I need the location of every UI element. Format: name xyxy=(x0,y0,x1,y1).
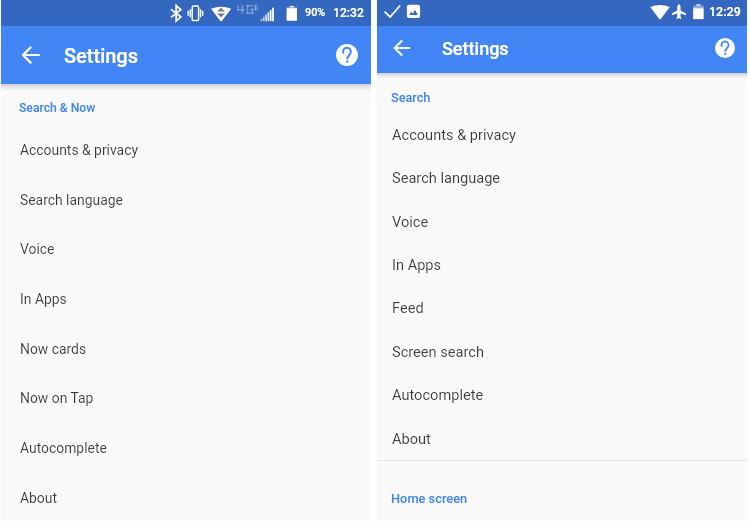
staticText: Voice xyxy=(20,241,55,257)
staticText: 90% xyxy=(305,6,326,19)
button[interactable]: Help xyxy=(715,38,735,58)
staticText: Home screen xyxy=(391,491,468,506)
staticText: About xyxy=(20,490,57,506)
staticText: Search language xyxy=(392,169,501,186)
button[interactable]: Screen search xyxy=(377,330,747,373)
button[interactable]: In Apps xyxy=(377,243,747,286)
button[interactable]: Autocomplete xyxy=(1,423,371,473)
staticText: Feed xyxy=(392,299,424,316)
staticText: Autocomplete xyxy=(392,386,484,403)
staticText: Now on Tap xyxy=(20,390,94,406)
staticText: Autocomplete xyxy=(20,440,107,456)
staticText: Screen search xyxy=(392,343,484,360)
staticText: About xyxy=(392,430,431,447)
button[interactable]: Help xyxy=(336,44,358,66)
staticText: Search xyxy=(391,90,431,105)
button[interactable]: Accounts & privacy xyxy=(377,113,747,156)
staticText: Accounts & privacy xyxy=(392,126,516,143)
staticText: In Apps xyxy=(20,291,67,307)
button[interactable]: Now on Tap xyxy=(1,373,371,423)
button[interactable]: Search language xyxy=(377,156,747,199)
staticText: Settings xyxy=(64,44,139,67)
button[interactable]: About xyxy=(377,417,747,460)
staticText: Search language xyxy=(20,192,123,208)
button[interactable]: Voice xyxy=(377,200,747,243)
button[interactable]: Feed xyxy=(377,286,747,329)
button[interactable]: Navigate up xyxy=(9,33,53,77)
button[interactable]: Accounts & privacy xyxy=(1,125,371,175)
staticText: Now cards xyxy=(20,341,87,357)
staticText: In Apps xyxy=(392,256,442,273)
staticText: Accounts & privacy xyxy=(20,142,139,158)
staticText: Search & Now xyxy=(19,101,96,115)
button[interactable]: Now cards xyxy=(1,324,371,374)
button[interactable]: Search language xyxy=(1,175,371,225)
button[interactable]: About xyxy=(1,473,371,521)
button[interactable]: In Apps xyxy=(1,274,371,324)
staticText: Settings xyxy=(442,38,509,59)
button[interactable]: Voice xyxy=(1,224,371,274)
button[interactable]: Navigate up xyxy=(380,26,424,70)
staticText: 12:32 xyxy=(333,6,364,20)
staticText: Voice xyxy=(392,213,429,230)
button[interactable]: Autocomplete xyxy=(377,373,747,416)
staticText: 12:29 xyxy=(709,4,741,19)
